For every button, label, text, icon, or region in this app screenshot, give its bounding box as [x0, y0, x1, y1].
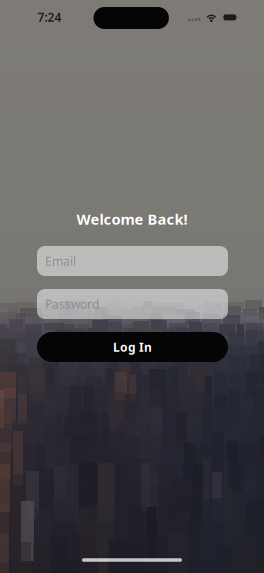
staticText: Log In — [113, 339, 152, 355]
button[interactable]: Log In — [37, 332, 228, 362]
staticText: Password — [45, 296, 99, 312]
staticText: 7:24 — [37, 9, 61, 25]
staticText: Welcome Back! — [76, 209, 187, 229]
staticText: Email — [45, 253, 76, 269]
